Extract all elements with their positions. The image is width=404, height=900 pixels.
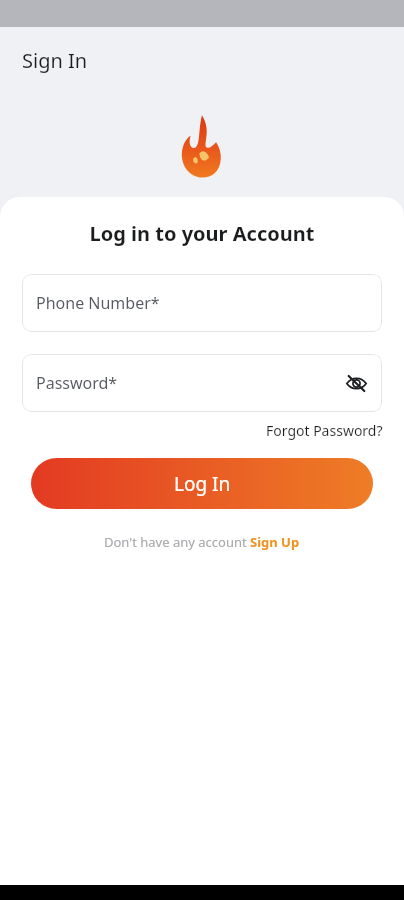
staticText: Sign In — [22, 47, 88, 74]
staticText: Phone Number* — [36, 292, 160, 314]
staticText: Don't have any account Sign Up — [104, 533, 300, 551]
staticText: Log in to your Account — [0, 220, 404, 247]
staticText: Log In — [174, 471, 231, 497]
button[interactable]: Password* — [22, 354, 382, 412]
button[interactable]: Log In — [31, 458, 373, 509]
button[interactable]: Forgot Password? — [264, 418, 385, 443]
button[interactable]: Don't have any account Sign Up — [100, 529, 304, 555]
button[interactable]: Show password — [340, 367, 372, 399]
button[interactable]: Phone Number* — [22, 274, 382, 332]
staticText: Password* — [36, 372, 118, 394]
staticText: Forgot Password? — [266, 421, 383, 440]
